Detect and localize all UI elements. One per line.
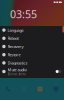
staticText: Language — [8, 27, 24, 33]
button[interactable]: Recovery — [0, 42, 64, 51]
staticText: Recovery — [8, 44, 24, 49]
button[interactable]: Reboot — [0, 34, 64, 42]
staticText: Reboot — [8, 36, 19, 41]
button[interactable]: Mute audio — [0, 67, 64, 76]
button[interactable]: More — [48, 78, 64, 100]
staticText: Silence alerts — [8, 72, 26, 76]
staticText: Diagnostics — [8, 60, 28, 65]
staticText: Mute audio — [8, 67, 27, 72]
button[interactable]: Language — [0, 26, 64, 34]
staticText: Restore — [8, 52, 21, 57]
staticText: 03:55 — [10, 7, 37, 21]
button[interactable]: Restore — [0, 51, 64, 59]
button[interactable]: Diagnostics — [0, 59, 64, 67]
button[interactable]: Media — [32, 78, 48, 100]
